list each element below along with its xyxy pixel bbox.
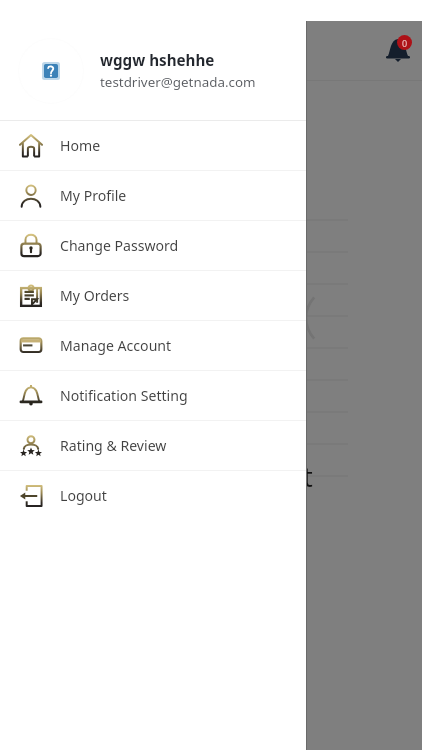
staticText: 0 [402,37,408,49]
staticText: Rating & Review [60,436,167,455]
staticText: t [303,458,313,495]
button[interactable]: My Orders [0,271,306,320]
staticText: My Orders [60,286,130,305]
staticText: My Profile [60,186,127,205]
staticText: Home [60,136,101,155]
staticText: wggw hshehhe [100,50,215,71]
staticText: Notification Setting [60,386,188,405]
staticText: Logout [60,486,107,505]
button[interactable]: My Profile [0,171,306,220]
button[interactable]: Notifications [376,28,420,72]
button[interactable]: Home [0,121,306,170]
button[interactable]: Manage Account [0,321,306,370]
staticText: Manage Account [60,336,172,355]
button[interactable]: Rating & Review [0,421,306,470]
button[interactable]: Logout [0,471,306,520]
staticText: Change Password [60,236,179,255]
button[interactable]: Close navigation drawer [0,0,422,750]
staticText: testdriver@getnada.com [100,73,256,91]
button[interactable]: Notification Setting [0,371,306,420]
button[interactable]: Change Password [0,221,306,270]
